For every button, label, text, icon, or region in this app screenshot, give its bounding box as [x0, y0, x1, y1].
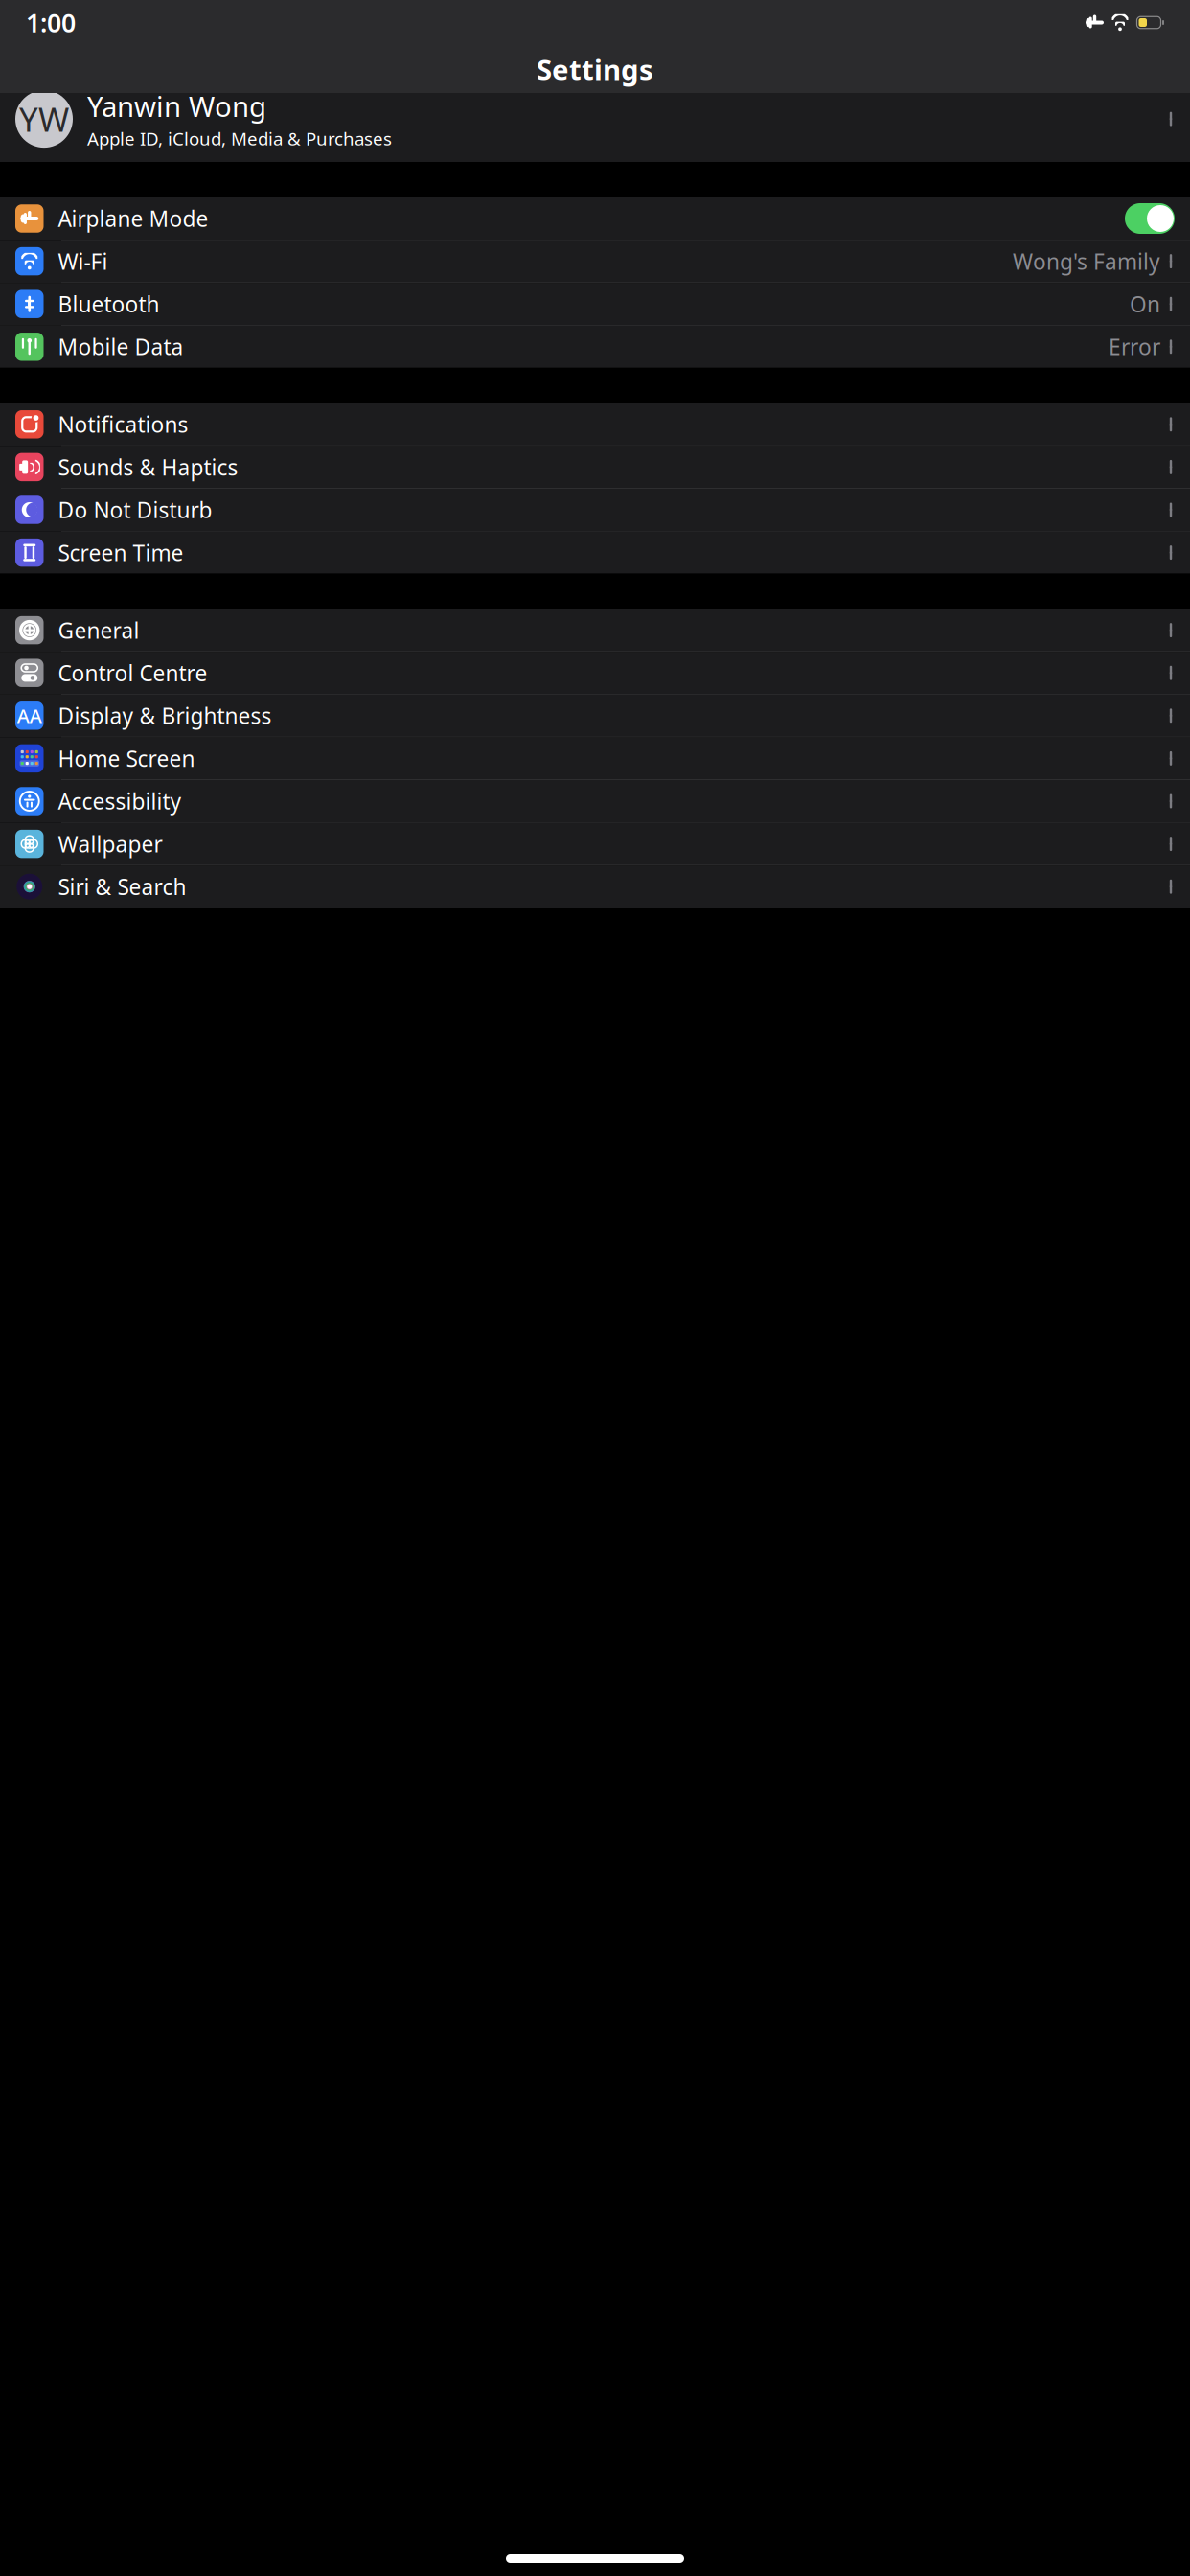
staticText: Wi-Fi	[58, 247, 108, 276]
staticText: Do Not Disturb	[58, 495, 212, 524]
button[interactable]: Mobile Data	[0, 326, 1190, 368]
staticText: Wong's Family	[1013, 247, 1160, 276]
staticText: Accessibility	[58, 787, 182, 816]
staticText: Notifications	[58, 410, 188, 439]
staticText: Wallpaper	[58, 829, 162, 858]
button[interactable]: Wallpaper	[0, 823, 1190, 866]
staticText: Control Centre	[58, 658, 207, 687]
staticText: YW	[19, 97, 69, 141]
staticText: Sounds & Haptics	[58, 453, 238, 481]
button[interactable]: Screen Time	[0, 531, 1190, 574]
button[interactable]: Wi-Fi	[0, 240, 1190, 283]
staticText: Settings	[537, 50, 653, 88]
button[interactable]: Siri & Search	[0, 866, 1190, 908]
staticText: Bluetooth	[58, 290, 160, 318]
staticText: Display & Brightness	[58, 701, 272, 730]
button[interactable]: Bluetooth	[0, 283, 1190, 326]
staticText: Siri & Search	[58, 872, 186, 901]
button[interactable]: Notifications	[0, 403, 1190, 446]
button[interactable]: General	[0, 609, 1190, 652]
staticText: AA	[17, 703, 42, 728]
staticText: Screen Time	[58, 538, 183, 567]
staticText: General	[58, 616, 139, 645]
staticText: 1:00	[26, 6, 76, 39]
staticText: Apple ID, iCloud, Media & Purchases	[87, 127, 392, 150]
staticText: Mobile Data	[58, 332, 183, 361]
button[interactable]: Sounds & Haptics	[0, 446, 1190, 489]
button[interactable]: Home Screen	[0, 737, 1190, 780]
button[interactable]: Airplane Mode	[0, 197, 1190, 240]
staticText: Error	[1109, 332, 1160, 361]
button[interactable]: Control Centre	[0, 652, 1190, 695]
staticText: Home Screen	[58, 744, 195, 773]
button[interactable]: YW	[0, 93, 1190, 162]
staticText: Yanwin Wong	[87, 87, 266, 125]
button[interactable]: AA	[0, 695, 1190, 737]
button[interactable]: Accessibility	[0, 780, 1190, 823]
staticText: Airplane Mode	[58, 204, 208, 233]
button[interactable]: Do Not Disturb	[0, 489, 1190, 531]
staticText: On	[1130, 290, 1160, 318]
